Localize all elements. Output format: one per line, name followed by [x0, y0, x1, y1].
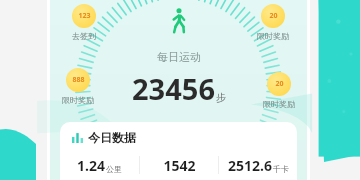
staticText: 今日数据: [88, 130, 136, 145]
staticText: 1.24: [77, 156, 105, 175]
button[interactable]: 123: [72, 4, 96, 41]
staticText: 23456: [132, 69, 215, 108]
staticText: 1542: [163, 156, 196, 175]
staticText: 千卡: [273, 164, 289, 174]
button[interactable]: 888: [62, 68, 94, 105]
staticText: 20: [275, 79, 284, 89]
button[interactable]: 20: [263, 72, 295, 109]
staticText: 每日运动: [157, 50, 201, 64]
button[interactable]: 1.24: [60, 156, 139, 175]
staticText: 限时奖励: [257, 31, 289, 41]
button[interactable]: 今日数据: [60, 122, 297, 180]
staticText: 2512.6: [228, 156, 272, 175]
button[interactable]: 20: [257, 4, 289, 41]
button[interactable]: 1542: [140, 156, 218, 175]
button[interactable]: 2512.6: [219, 156, 297, 175]
staticText: 限时奖励: [263, 99, 295, 109]
staticText: 123: [78, 11, 91, 21]
staticText: 步: [216, 91, 226, 104]
staticText: 公里: [106, 164, 122, 174]
other: 步行: [168, 8, 190, 34]
staticText: 去签到: [72, 31, 96, 41]
staticText: 20: [269, 11, 278, 21]
staticText: 限时奖励: [62, 95, 94, 105]
staticText: 888: [72, 75, 85, 85]
